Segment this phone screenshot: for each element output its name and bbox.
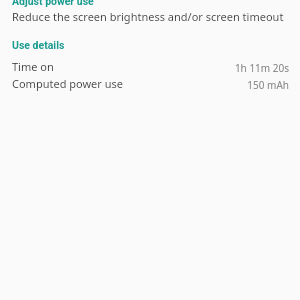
staticText: Time on	[12, 59, 54, 74]
staticText: 150 mAh	[247, 78, 289, 92]
staticText: Adjust power use	[12, 0, 94, 7]
button[interactable]: Time on	[0, 57, 300, 75]
staticText: 1h 11m 20s	[234, 61, 289, 75]
button[interactable]: Use details	[0, 37, 300, 52]
staticText: Use details	[12, 39, 65, 51]
staticText: Computed power use	[12, 76, 123, 91]
button[interactable]: Adjust power use	[0, 0, 300, 8]
button[interactable]: Computed power use	[0, 74, 300, 92]
staticText: Reduce the screen brightness and/or scre…	[12, 9, 284, 24]
